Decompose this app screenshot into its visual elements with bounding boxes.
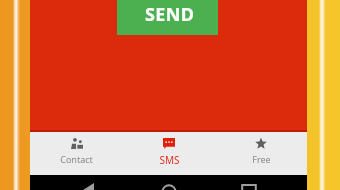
button[interactable]: SEND bbox=[117, 0, 218, 35]
button[interactable]: Free bbox=[215, 132, 307, 175]
button[interactable]: Home bbox=[162, 179, 176, 190]
button[interactable]: SMS bbox=[123, 132, 215, 175]
button[interactable]: Recent apps bbox=[242, 179, 256, 190]
staticText: Free bbox=[252, 153, 271, 165]
staticText: SMS bbox=[159, 153, 180, 167]
staticText: SEND bbox=[145, 2, 195, 27]
staticText: Contact bbox=[60, 153, 93, 165]
button[interactable]: Back bbox=[83, 184, 94, 190]
button[interactable]: Contact bbox=[30, 132, 123, 175]
